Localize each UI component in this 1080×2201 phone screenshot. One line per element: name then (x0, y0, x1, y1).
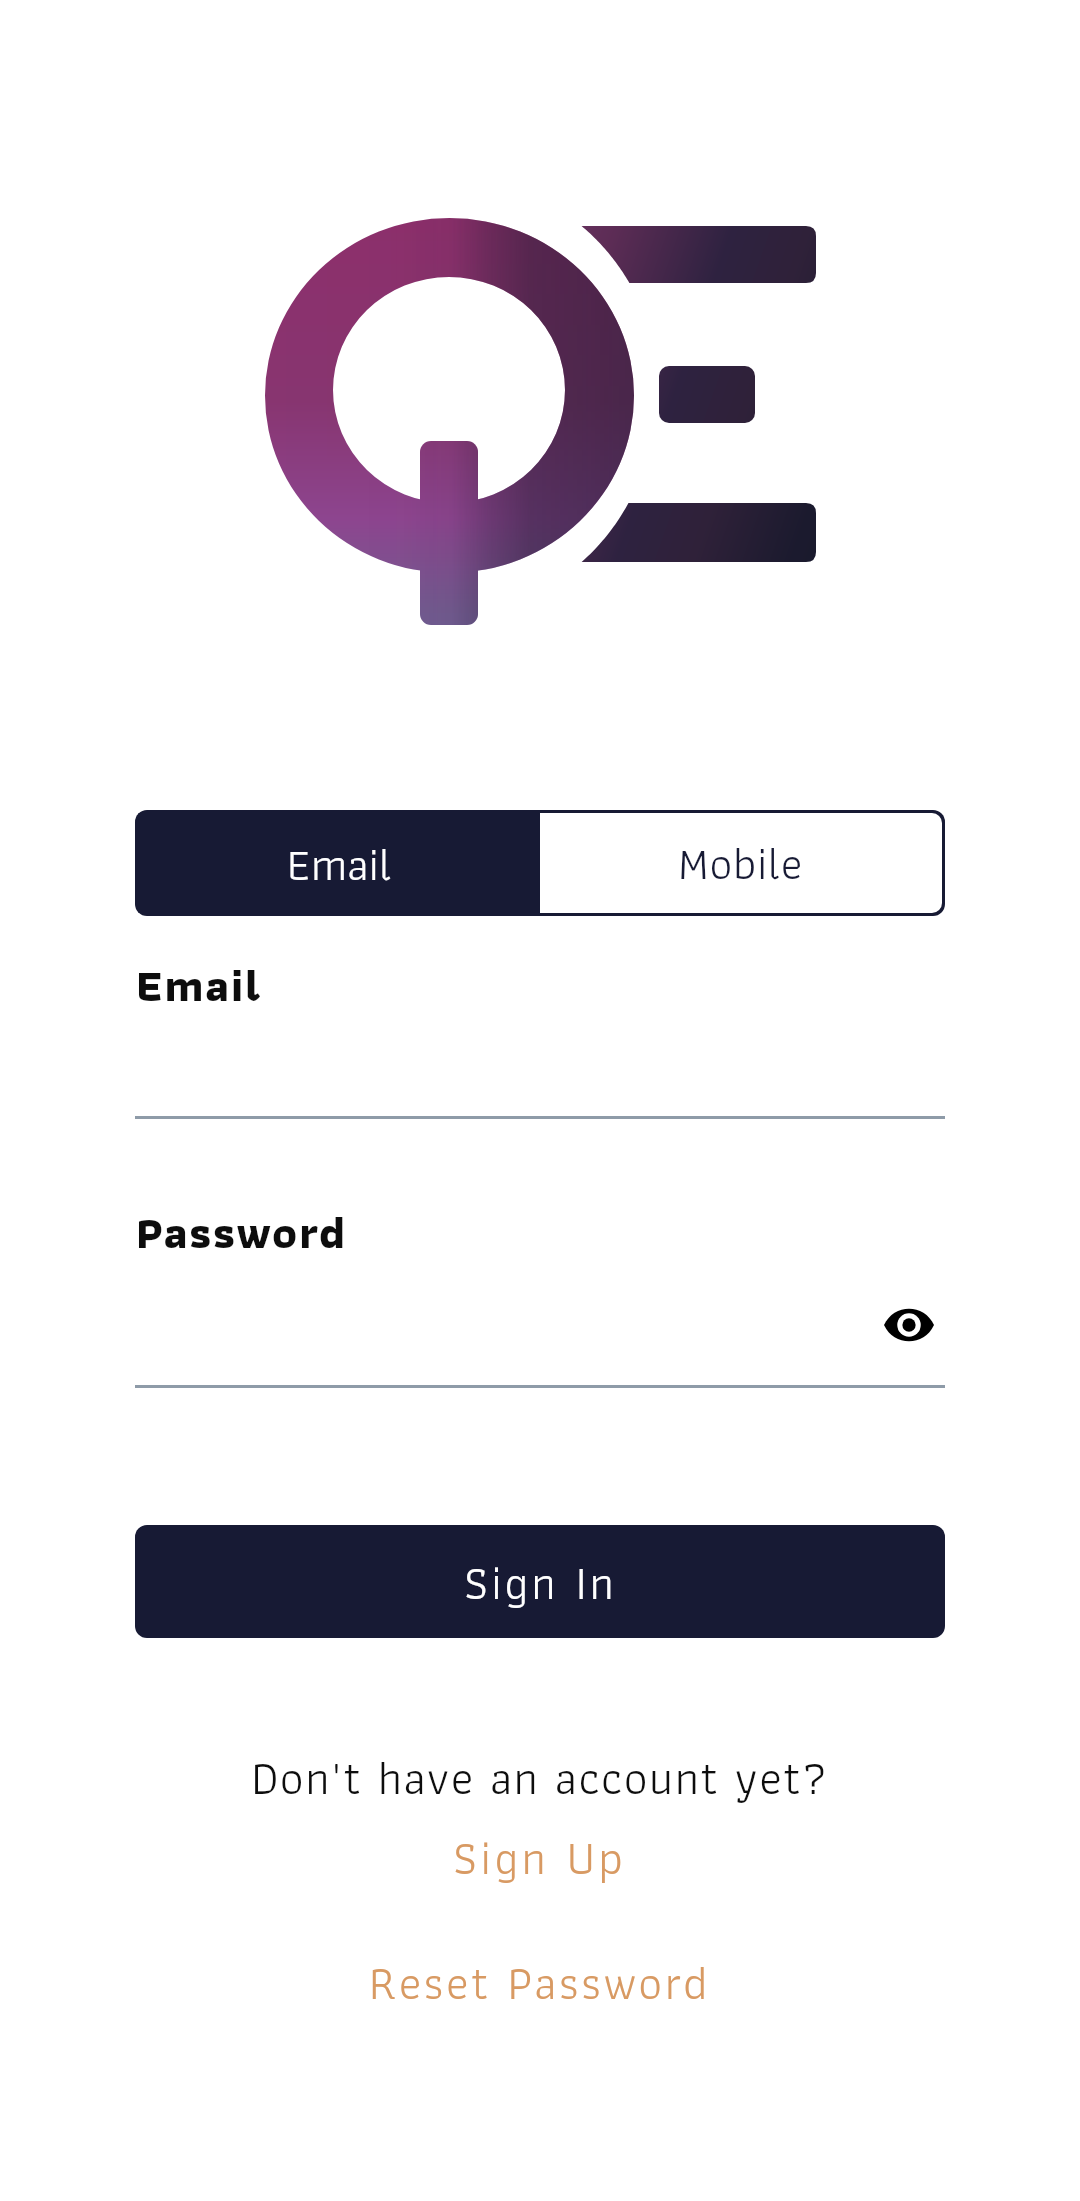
button[interactable]: Show password (874, 1290, 944, 1360)
staticText: Sign Up (453, 1820, 627, 1895)
button[interactable]: Sign In (135, 1525, 945, 1638)
staticText: Don't have an account yet? (251, 1740, 829, 1815)
staticText: Reset Password (369, 1945, 711, 2020)
button[interactable]: Reset Password (345, 1937, 735, 2028)
button[interactable]: Mobile (540, 813, 942, 913)
button[interactable]: Sign Up (429, 1812, 651, 1903)
staticText: Sign In (464, 1545, 617, 1620)
staticText: Email (287, 828, 392, 900)
button[interactable]: Email (138, 813, 540, 913)
staticText: Email (136, 948, 262, 1022)
staticText: Password (136, 1195, 347, 1269)
staticText: Mobile (678, 827, 804, 899)
